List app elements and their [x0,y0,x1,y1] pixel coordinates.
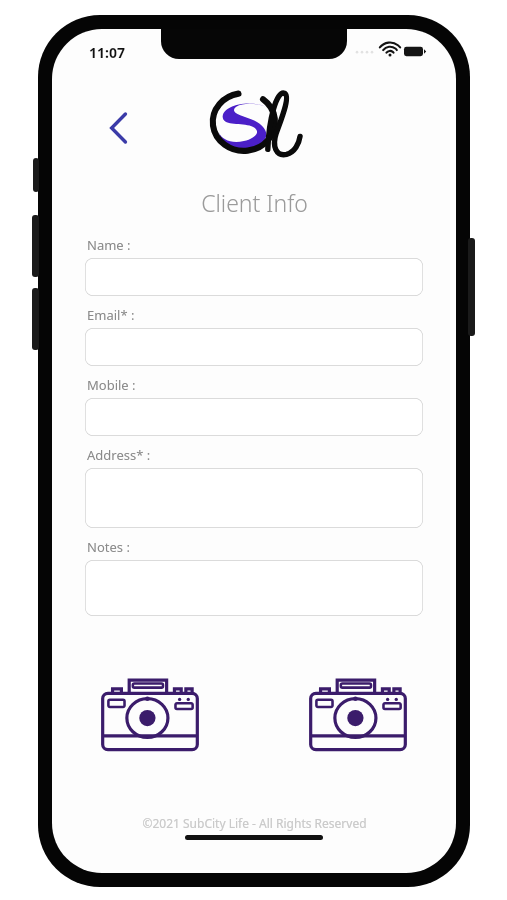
button[interactable]: Take photo [98,677,202,753]
button[interactable] [85,328,423,366]
button[interactable]: Upload photo [306,677,410,753]
staticText: Address* : [87,446,151,464]
staticText: Mobile : [87,376,136,394]
staticText: ©2021 SubCity Life - All Rights Reserved [142,815,367,831]
button[interactable] [85,258,423,296]
button[interactable]: Back [96,101,142,155]
staticText: Name : [87,236,131,254]
button[interactable] [85,398,423,436]
staticText: Notes : [87,538,130,556]
button[interactable] [85,560,423,616]
staticText: Client Info [201,187,308,218]
button[interactable] [85,468,423,528]
staticText: Email* : [87,306,135,324]
staticText: 11:07 [89,43,125,62]
